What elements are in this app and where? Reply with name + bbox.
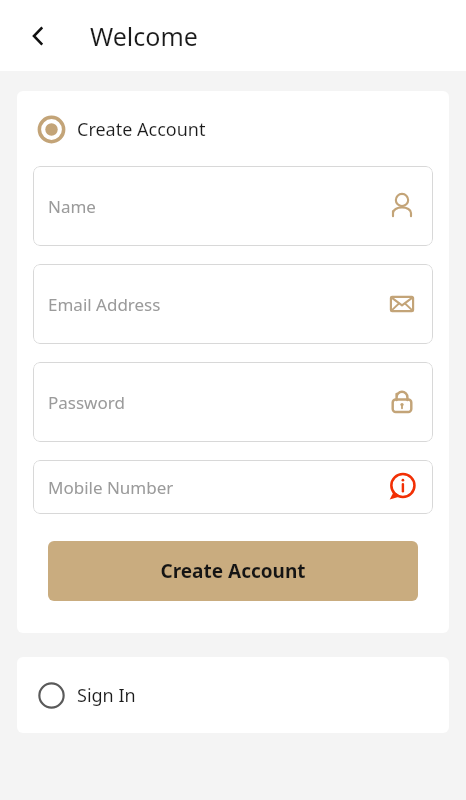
staticText: Sign In: [77, 683, 136, 708]
button[interactable]: Password: [33, 362, 433, 442]
button[interactable]: Email Address: [33, 264, 433, 344]
button[interactable]: Back: [14, 12, 62, 60]
staticText: Name: [48, 195, 96, 218]
button[interactable]: Create Account: [17, 114, 449, 145]
button[interactable]: Sign In: [17, 657, 449, 733]
button[interactable]: Mobile Number: [33, 460, 433, 514]
staticText: Welcome: [90, 19, 198, 53]
button[interactable]: Create Account: [48, 541, 418, 601]
staticText: Mobile Number: [48, 476, 174, 499]
staticText: Password: [48, 391, 125, 414]
staticText: Email Address: [48, 293, 161, 316]
button[interactable]: Name: [33, 166, 433, 246]
staticText: Create Account: [77, 117, 206, 142]
staticText: Create Account: [160, 558, 306, 584]
